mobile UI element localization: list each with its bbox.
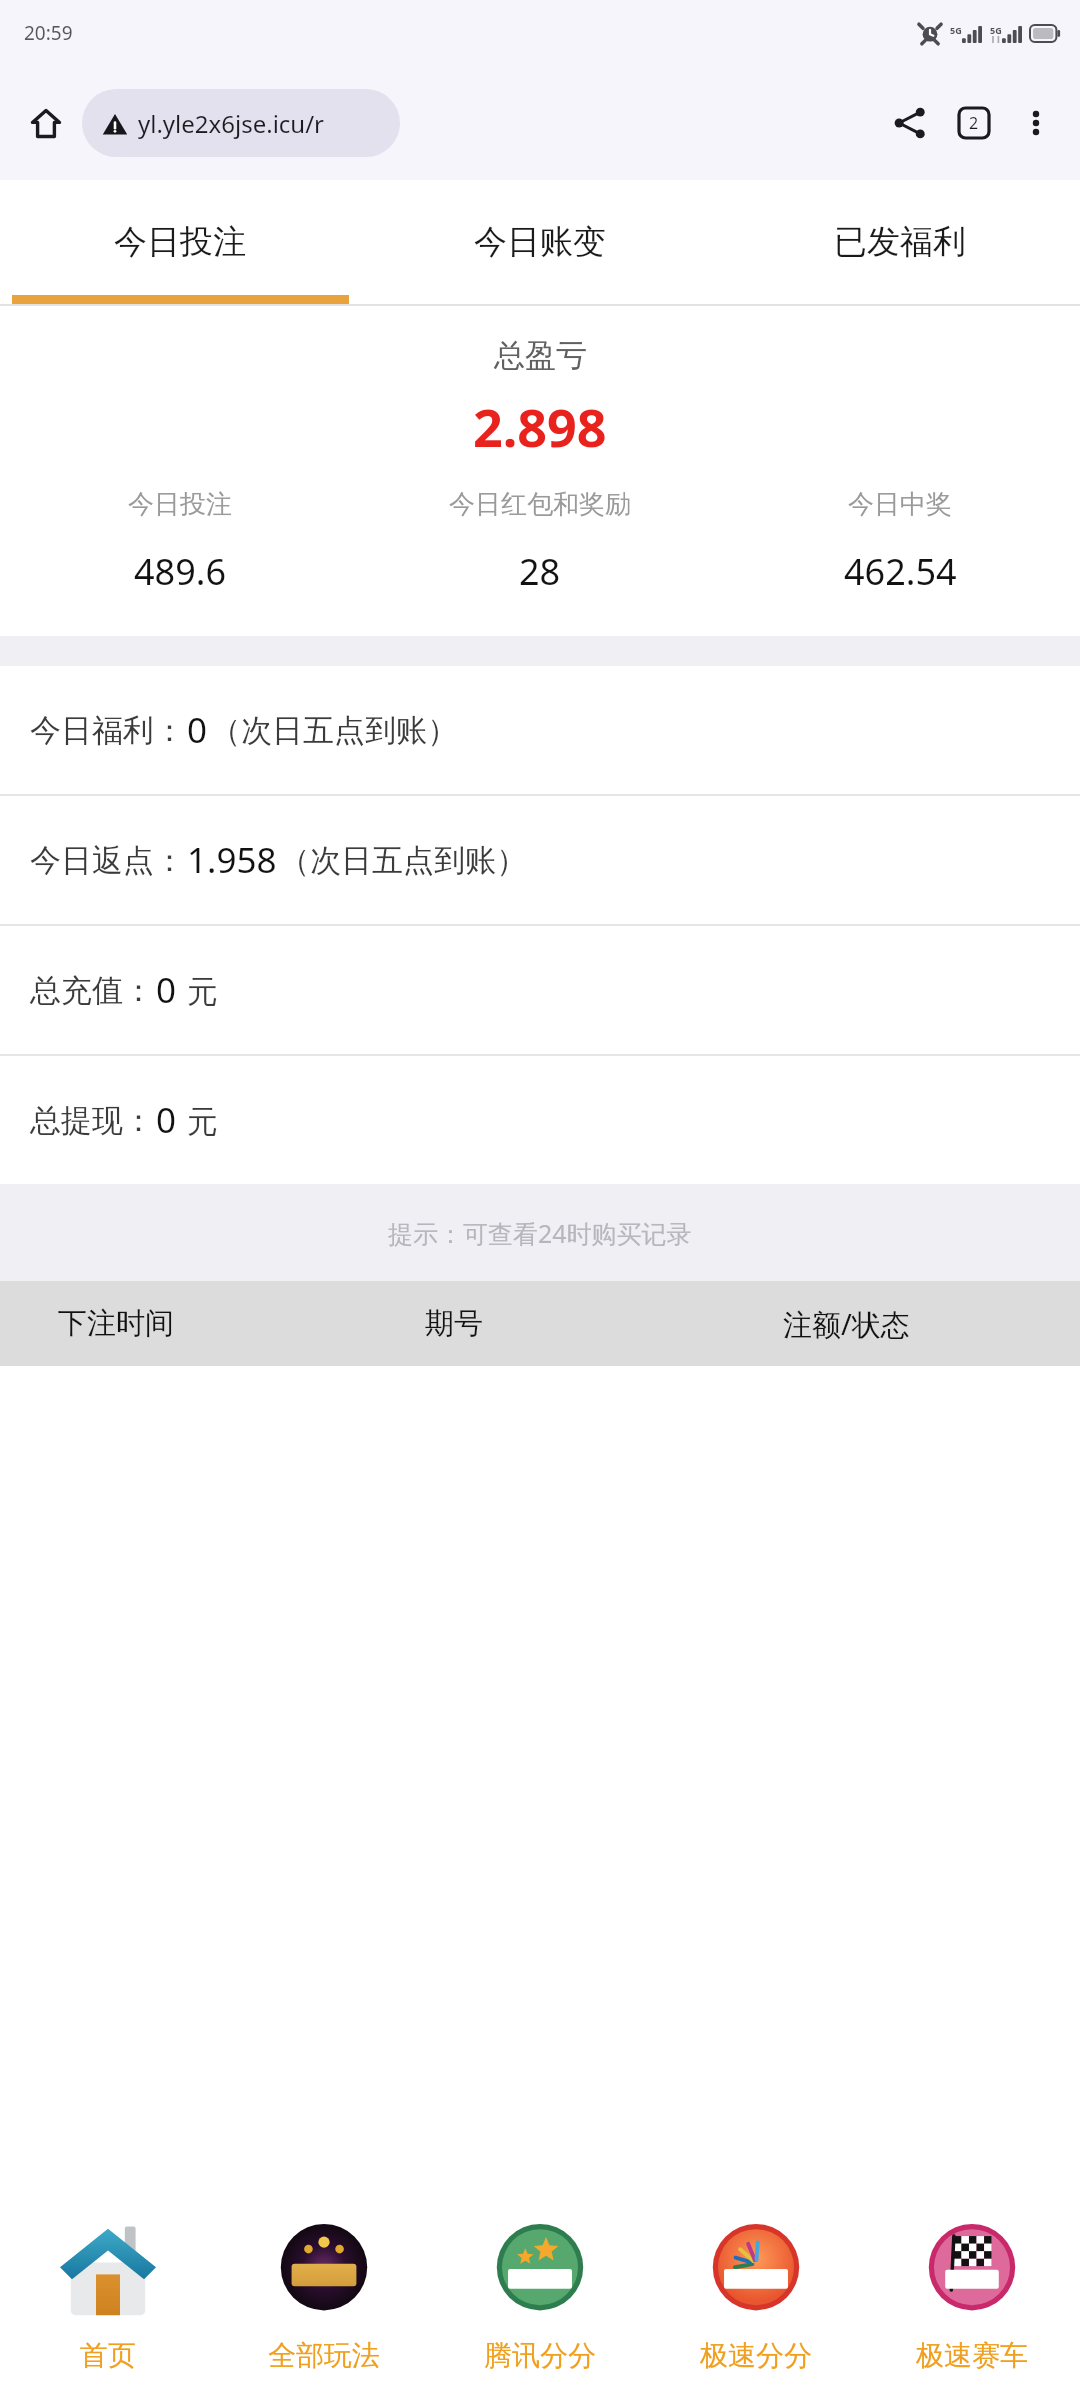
button[interactable]: 今日返点：	[0, 796, 1080, 924]
staticText: 今日账变	[474, 221, 606, 263]
button[interactable]: 总提现：	[0, 1056, 1080, 1184]
staticText: 注额/状态	[783, 1304, 910, 1344]
staticText: 总充值：	[30, 971, 154, 1010]
button[interactable]: Tabs: 2	[942, 91, 1006, 155]
staticText: 极速赛车	[916, 2338, 1028, 2373]
button[interactable]: 全部玩法	[216, 2190, 432, 2400]
button[interactable]: 已发福利	[720, 180, 1080, 304]
staticText: yl.yle2x6jse.icu/r	[138, 107, 325, 140]
button[interactable]: Home	[18, 95, 74, 151]
staticText: 今日投注	[114, 221, 246, 263]
staticText: 0	[156, 1096, 177, 1144]
staticText: 元	[179, 1099, 219, 1141]
staticText: 今日福利：	[30, 711, 185, 750]
staticText: 今日返点：	[30, 841, 185, 880]
staticText: 28	[519, 547, 561, 596]
staticText: 总盈亏	[494, 336, 587, 375]
button[interactable]: 极速分分	[648, 2190, 864, 2400]
button[interactable]: 今日福利：	[0, 666, 1080, 794]
staticText: 极速分分	[700, 2338, 812, 2373]
staticText: 已发福利	[834, 221, 966, 263]
button[interactable]: 腾讯分分	[432, 2190, 648, 2400]
staticText: 2.898	[473, 391, 607, 462]
staticText: 腾讯分分	[484, 2338, 596, 2373]
button[interactable]: 今日账变	[360, 180, 720, 304]
staticText: 0	[156, 966, 177, 1014]
staticText: 今日红包和奖励	[449, 488, 631, 521]
staticText: 0	[187, 706, 208, 754]
staticText: 今日中奖	[848, 488, 952, 521]
staticText: 489.6	[134, 547, 227, 596]
staticText: 提示：可查看24时购买记录	[388, 1216, 692, 1250]
button[interactable]: 极速赛车	[864, 2190, 1080, 2400]
button[interactable]: 首页	[0, 2190, 216, 2400]
staticText: （次日五点到账）	[210, 711, 458, 750]
button[interactable]: 总充值：	[0, 926, 1080, 1054]
staticText: 今日投注	[128, 488, 232, 521]
staticText: 期号	[425, 1305, 483, 1342]
staticText: 20:59	[24, 20, 73, 46]
staticText: 总提现：	[30, 1101, 154, 1140]
staticText: 元	[179, 969, 219, 1011]
staticText: （次日五点到账）	[279, 841, 527, 880]
staticText: 5G	[990, 24, 1002, 36]
staticText: 首页	[80, 2338, 136, 2373]
button[interactable]: yl.yle2x6jse.icu/r	[82, 89, 400, 157]
staticText: 2	[969, 112, 979, 134]
button[interactable]: 今日投注	[0, 180, 360, 304]
staticText: 下注时间	[58, 1305, 174, 1342]
staticText: 462.54	[844, 547, 957, 596]
staticText: 1.958	[187, 836, 277, 884]
button[interactable]: Share	[878, 91, 942, 155]
staticText: 全部玩法	[268, 2338, 380, 2373]
button[interactable]: More options	[1006, 91, 1066, 155]
staticText: 5G	[950, 24, 962, 36]
